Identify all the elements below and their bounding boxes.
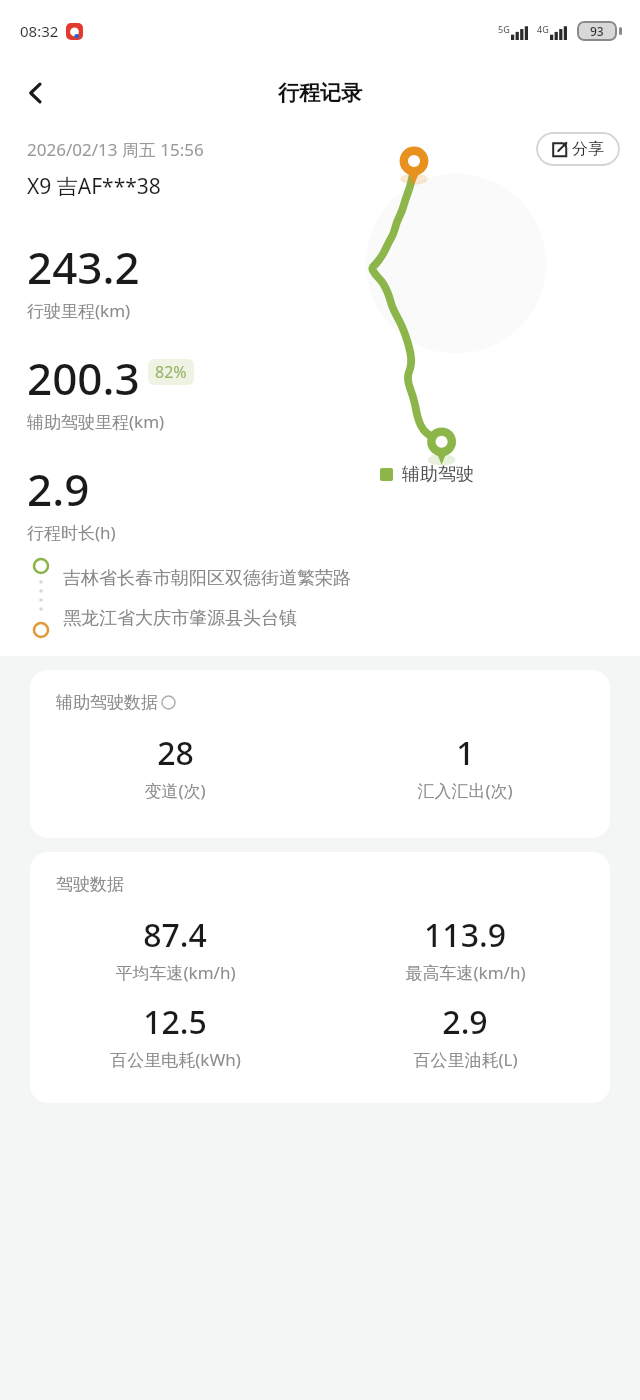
button[interactable]: 分享 bbox=[536, 132, 620, 166]
staticText: 12.5 bbox=[143, 1000, 207, 1044]
staticText: 行程时长(h) bbox=[27, 521, 116, 544]
staticText: 分享 bbox=[572, 139, 604, 159]
button[interactable]: 辅助驾驶数据 bbox=[30, 670, 610, 838]
staticText: 4G bbox=[537, 23, 549, 35]
staticText: 113.9 bbox=[424, 913, 506, 957]
button[interactable]: 驾驶数据 bbox=[30, 852, 610, 1103]
staticText: 百公里电耗(kWh) bbox=[110, 1048, 241, 1071]
staticText: 行驶里程(km) bbox=[27, 299, 131, 322]
staticText: 1 bbox=[456, 731, 475, 775]
staticText: 2.9 bbox=[27, 459, 90, 519]
staticText: 28 bbox=[157, 731, 194, 775]
staticText: 243.2 bbox=[27, 237, 140, 297]
staticText: 93 bbox=[590, 23, 604, 39]
staticText: X9 吉AF***38 bbox=[27, 172, 161, 201]
staticText: 5G bbox=[498, 23, 510, 35]
staticText: 87.4 bbox=[143, 913, 207, 957]
staticText: 2.9 bbox=[442, 1000, 488, 1044]
staticText: 辅助驾驶里程(km) bbox=[27, 410, 165, 433]
button[interactable]: Back bbox=[10, 67, 62, 119]
staticText: 82% bbox=[155, 361, 187, 383]
staticText: 08:32 bbox=[20, 21, 59, 41]
staticText: 黑龙江省大庆市肇源县头台镇 bbox=[63, 607, 297, 630]
staticText: 最高车速(km/h) bbox=[405, 961, 526, 984]
staticText: 百公里油耗(L) bbox=[413, 1048, 518, 1071]
staticText: 200.3 bbox=[27, 348, 140, 408]
staticText: 汇入汇出(次) bbox=[417, 779, 513, 802]
staticText: 辅助驾驶 bbox=[402, 463, 474, 486]
staticText: 2026/02/13 周五 15:56 bbox=[27, 138, 204, 161]
staticText: 变道(次) bbox=[144, 779, 206, 802]
staticText: 行程记录 bbox=[278, 80, 362, 106]
staticText: 驾驶数据 bbox=[56, 874, 124, 895]
staticText: 平均车速(km/h) bbox=[115, 961, 236, 984]
staticText: 吉林省长春市朝阳区双德街道繁荣路 bbox=[63, 567, 351, 590]
staticText: 辅助驾驶数据 bbox=[56, 692, 158, 713]
